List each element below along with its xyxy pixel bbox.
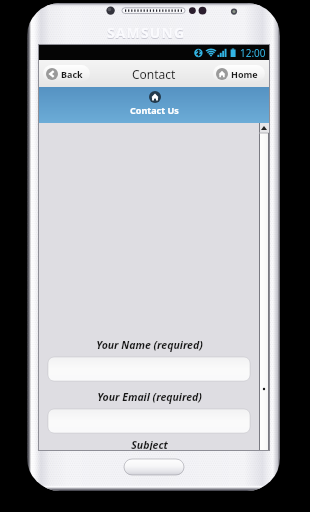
button[interactable] — [48, 409, 250, 433]
staticText: Your Name (required) — [96, 338, 203, 352]
button[interactable] — [48, 357, 250, 381]
staticText: Your Email (required) — [97, 390, 202, 404]
staticText: SAMSUNG — [107, 23, 186, 42]
staticText: Home — [231, 68, 258, 80]
button[interactable]: Contact Us — [39, 87, 269, 123]
button[interactable]: Scroll up — [259, 123, 269, 133]
staticText: Contact — [132, 66, 176, 82]
staticText: Contact Us — [130, 104, 179, 116]
staticText: 12:00 — [240, 46, 266, 60]
button[interactable]: Home — [124, 459, 184, 475]
staticText: Back — [61, 68, 83, 80]
button[interactable]: Home — [213, 65, 265, 82]
button[interactable]: Back — [43, 65, 90, 82]
staticText: Subject — [131, 438, 168, 450]
staticText: SAMSUNG — [107, 24, 186, 43]
